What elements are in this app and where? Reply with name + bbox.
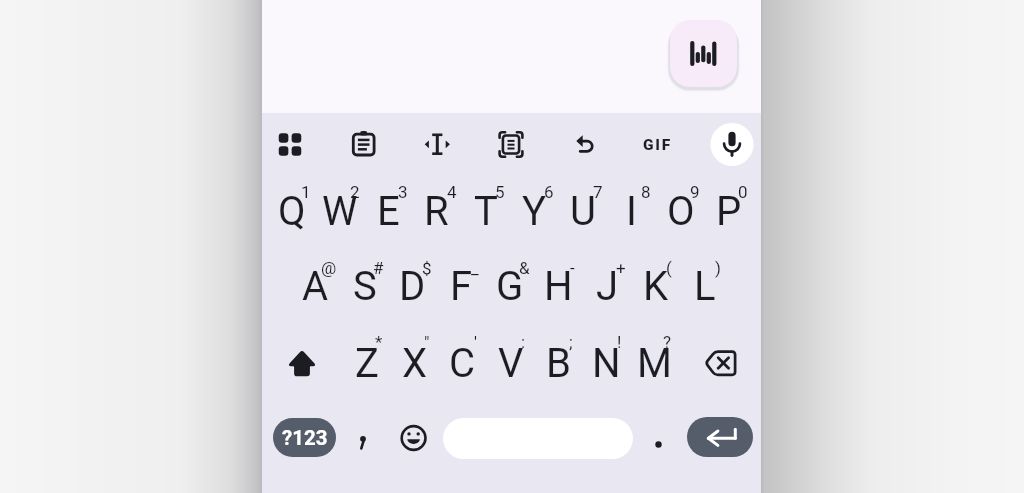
button[interactable]: O (656, 174, 705, 249)
button[interactable]: N (582, 326, 631, 401)
button[interactable]: G (485, 249, 534, 324)
button[interactable] (409, 116, 465, 173)
staticText: P (716, 188, 742, 235)
staticText: U (570, 188, 596, 235)
staticText: 8 (641, 182, 651, 202)
staticText: O (667, 188, 695, 235)
staticText: Y (522, 188, 547, 235)
staticText: K (643, 263, 669, 310)
staticText: R (424, 188, 449, 235)
staticText: GIF (643, 136, 673, 154)
staticText: - (570, 258, 575, 278)
button[interactable]: R (412, 174, 461, 249)
button[interactable] (483, 116, 539, 173)
button[interactable]: M (630, 326, 679, 401)
staticText: 1 (301, 182, 311, 202)
staticText: M (637, 340, 672, 387)
button[interactable]: W (315, 174, 364, 249)
staticText: E (377, 188, 400, 235)
button[interactable] (339, 400, 387, 475)
staticText: I (626, 188, 637, 235)
button[interactable]: Y (510, 174, 559, 249)
staticText: @ (321, 258, 337, 278)
button[interactable] (278, 325, 326, 400)
button[interactable] (557, 116, 613, 173)
staticText: V (498, 340, 524, 387)
staticText: 4 (447, 182, 457, 202)
staticText: & (519, 258, 530, 278)
button[interactable]: F (437, 249, 486, 324)
staticText: ! (617, 332, 622, 352)
button[interactable]: ?123 (273, 418, 336, 457)
button[interactable]: D (388, 249, 437, 324)
staticText: C (449, 340, 476, 387)
staticText: B (546, 340, 571, 387)
button[interactable]: H (534, 249, 583, 324)
staticText: S (353, 263, 377, 310)
button[interactable]: S (340, 249, 389, 324)
staticText: ( (666, 258, 672, 278)
staticText: * (375, 332, 383, 352)
staticText: 2 (350, 182, 360, 202)
button[interactable] (704, 116, 760, 173)
staticText: 9 (690, 182, 700, 202)
button[interactable]: I (607, 174, 656, 249)
button[interactable]: K (631, 249, 680, 324)
button[interactable] (443, 418, 633, 459)
button[interactable]: V (486, 326, 535, 401)
staticText: ) (715, 258, 721, 278)
staticText: 6 (544, 182, 554, 202)
button[interactable] (262, 116, 318, 173)
staticText: G (496, 263, 524, 310)
staticText: " (424, 332, 430, 352)
staticText: 3 (398, 182, 408, 202)
staticText: 7 (593, 182, 603, 202)
staticText: Z (355, 340, 379, 387)
staticText: # (373, 258, 384, 278)
button[interactable]: B (534, 326, 583, 401)
staticText: $ (422, 258, 432, 278)
staticText: ? (663, 332, 672, 352)
button[interactable] (687, 417, 753, 457)
staticText: X (402, 340, 428, 387)
staticText: J (596, 263, 619, 310)
staticText: _ (471, 258, 479, 278)
staticText: D (399, 263, 426, 310)
button[interactable]: L (680, 249, 729, 324)
button[interactable]: J (583, 249, 632, 324)
button[interactable] (670, 20, 737, 87)
staticText: N (592, 340, 621, 387)
staticText: ?123 (282, 426, 328, 450)
staticText: A (302, 263, 329, 310)
button[interactable]: X (390, 326, 439, 401)
button[interactable]: C (438, 326, 487, 401)
button[interactable]: A (291, 249, 340, 324)
button[interactable]: Q (267, 174, 316, 249)
button[interactable] (389, 400, 437, 475)
button[interactable] (335, 116, 391, 173)
staticText: : (521, 332, 526, 352)
button[interactable] (634, 400, 682, 475)
button[interactable]: U (558, 174, 607, 249)
staticText: L (694, 263, 716, 310)
button[interactable]: P (704, 174, 753, 249)
button[interactable] (696, 325, 744, 400)
staticText: 0 (738, 182, 748, 202)
staticText: H (544, 263, 573, 310)
staticText: T (474, 188, 498, 235)
staticText: Q (278, 188, 306, 235)
staticText: F (450, 263, 473, 310)
staticText: ' (474, 332, 477, 352)
staticText: 5 (495, 182, 505, 202)
staticText: W (322, 188, 358, 235)
button[interactable]: T (461, 174, 510, 249)
staticText: ; (569, 332, 573, 352)
button[interactable]: Z (342, 326, 391, 401)
button[interactable]: E (364, 174, 413, 249)
staticText: + (616, 258, 626, 278)
button[interactable] (630, 116, 686, 173)
